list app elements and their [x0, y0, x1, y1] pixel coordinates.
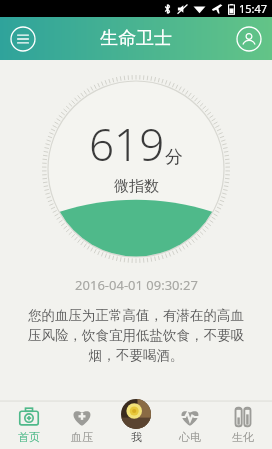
staticText: 分: [165, 146, 183, 169]
button[interactable]: 我: [111, 401, 161, 449]
button[interactable]: Menu: [8, 24, 38, 54]
staticText: 2016-04-01 09:30:27: [75, 276, 198, 294]
staticText: 您的血压为正常高值，有潜在的高血压风险，饮食宜用低盐饮食，不要吸烟，不要喝酒。: [26, 307, 246, 364]
staticText: 619: [89, 114, 165, 174]
staticText: 15:47: [239, 1, 268, 16]
button[interactable]: 首页: [4, 401, 54, 449]
button[interactable]: 血压: [57, 401, 107, 449]
staticText: 首页: [18, 430, 40, 444]
button[interactable]: Profile: [234, 24, 264, 54]
staticText: 微指数: [114, 177, 159, 196]
staticText: 血压: [71, 430, 93, 444]
staticText: 我: [131, 430, 142, 444]
button[interactable]: 心电: [165, 401, 215, 449]
button[interactable]: 生化: [218, 401, 268, 449]
staticText: 心电: [179, 430, 201, 444]
staticText: 生命卫士: [100, 27, 172, 50]
staticText: 生化: [232, 430, 254, 444]
